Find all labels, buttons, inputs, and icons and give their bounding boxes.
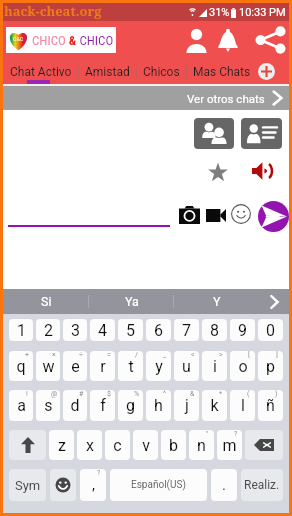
- staticText: _: [163, 351, 167, 359]
- staticText: 1: [17, 321, 26, 340]
- button[interactable]: Group chat: [194, 118, 234, 149]
- staticText: x: [86, 436, 94, 455]
- staticText: &: [190, 390, 195, 398]
- button[interactable]: r: [90, 351, 115, 381]
- button[interactable]: m: [217, 430, 242, 460]
- button[interactable]: .: [211, 469, 237, 501]
- button[interactable]: Share: [254, 23, 287, 57]
- button[interactable]: c: [105, 430, 130, 460]
- staticText: q: [16, 357, 26, 376]
- button[interactable]: 3: [63, 319, 87, 341]
- staticText: Y: [213, 294, 221, 309]
- button[interactable]: z: [49, 430, 74, 460]
- button[interactable]: h: [146, 390, 171, 421]
- button[interactable]: Backspace: [245, 430, 283, 460]
- staticText: ÷: [79, 351, 83, 359]
- button[interactable]: l: [230, 390, 255, 421]
- button[interactable]: Send: [258, 201, 289, 232]
- button[interactable]: 5: [118, 319, 143, 341]
- button[interactable]: 1: [9, 319, 33, 341]
- button[interactable]: y: [146, 351, 171, 381]
- staticText: v: [142, 436, 150, 455]
- staticText: /: [135, 351, 138, 359]
- staticText: Español(US): [131, 479, 186, 491]
- button[interactable]: Favorite: [207, 161, 229, 183]
- button[interactable]: 9: [230, 319, 255, 341]
- button[interactable]: b: [161, 430, 186, 460]
- staticText: t: [128, 357, 134, 376]
- button[interactable]: Mas Chats: [193, 65, 251, 79]
- staticText: p: [266, 357, 275, 376]
- staticText: 3: [71, 321, 80, 340]
- button[interactable]: Video call: [204, 205, 228, 225]
- button[interactable]: i: [202, 351, 227, 381]
- staticText: $: [107, 390, 111, 398]
- button[interactable]: Camera: [178, 204, 201, 225]
- button[interactable]: 0: [258, 319, 283, 341]
- button[interactable]: Amistad: [85, 65, 130, 79]
- staticText: k: [210, 396, 219, 415]
- button[interactable]: q: [9, 351, 33, 381]
- button[interactable]: Ya: [89, 289, 174, 314]
- button[interactable]: 7: [174, 319, 199, 341]
- button[interactable]: Emoji: [230, 203, 252, 225]
- button[interactable]: ,: [80, 469, 106, 501]
- staticText: w: [42, 357, 55, 376]
- button[interactable]: p: [258, 351, 283, 381]
- staticText: 9: [238, 321, 247, 340]
- button[interactable]: u: [174, 351, 199, 381]
- button[interactable]: d: [63, 390, 87, 421]
- button[interactable]: 4: [90, 319, 115, 341]
- staticText: ?: [97, 469, 101, 477]
- button[interactable]: ñ: [258, 390, 283, 421]
- staticText: f: [100, 396, 106, 415]
- staticText: a: [17, 396, 26, 415]
- button[interactable]: e: [63, 351, 87, 381]
- staticText: .: [222, 476, 226, 494]
- button[interactable]: f: [90, 390, 115, 421]
- button[interactable]: s: [36, 390, 60, 421]
- button[interactable]: Notifications: [213, 23, 243, 57]
- staticText: ,: [92, 476, 95, 494]
- button[interactable]: C&C: [6, 27, 116, 53]
- staticText: m: [222, 436, 237, 455]
- button[interactable]: Chicos: [143, 65, 180, 79]
- button[interactable]: v: [133, 430, 158, 460]
- button[interactable]: Si: [3, 289, 89, 314]
- button[interactable]: Sound on: [251, 161, 273, 181]
- staticText: 31%: [209, 6, 230, 19]
- staticText: 10:33 PM: [239, 6, 286, 19]
- button[interactable]: o: [230, 351, 255, 381]
- staticText: (: [247, 390, 250, 398]
- button[interactable]: t: [118, 351, 143, 381]
- staticText: ñ: [266, 396, 275, 415]
- button[interactable]: Contact card: [241, 118, 282, 149]
- button[interactable]: k: [202, 390, 227, 421]
- button[interactable]: More suggestions: [259, 289, 289, 314]
- button[interactable]: Profile: [181, 23, 211, 57]
- button[interactable]: x: [77, 430, 102, 460]
- button[interactable]: Ver otros chats: [3, 86, 289, 110]
- button[interactable]: Realiz.: [241, 469, 283, 501]
- button[interactable]: Emoji keyboard: [50, 469, 76, 501]
- button[interactable]: 8: [202, 319, 227, 341]
- button[interactable]: w: [36, 351, 60, 381]
- button[interactable]: Sym: [9, 469, 46, 501]
- button[interactable]: 6: [146, 319, 171, 341]
- staticText: o: [238, 357, 248, 376]
- staticText: Ver otros chats: [187, 92, 265, 105]
- button[interactable]: a: [9, 390, 33, 421]
- staticText: Ya: [125, 294, 139, 309]
- button[interactable]: g: [118, 390, 143, 421]
- button[interactable]: j: [174, 390, 199, 421]
- button[interactable]: Y: [174, 289, 259, 314]
- button[interactable]: Chat Activo: [10, 65, 72, 79]
- button[interactable]: Español(US): [110, 469, 207, 501]
- staticText: ": [206, 430, 209, 438]
- button[interactable]: 2: [36, 319, 60, 341]
- button[interactable]: Add chat: [258, 63, 275, 80]
- staticText: ): [275, 390, 278, 398]
- staticText: CHICO & CHICO: [32, 33, 114, 48]
- button[interactable]: Shift: [9, 430, 46, 460]
- button[interactable]: n: [189, 430, 214, 460]
